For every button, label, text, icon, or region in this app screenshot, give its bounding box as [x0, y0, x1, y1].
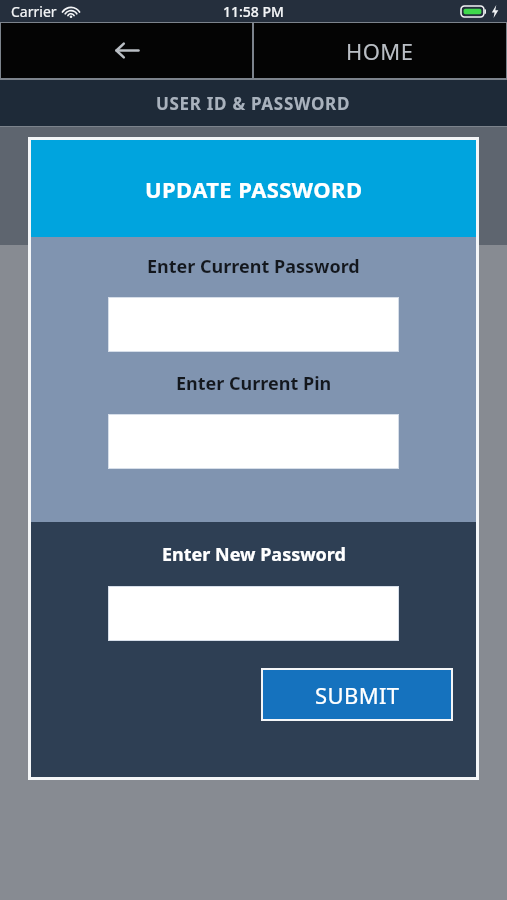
button[interactable]: HOME — [254, 23, 506, 78]
staticText: Enter Current Password — [147, 254, 360, 279]
staticText: UPDATE PASSWORD — [145, 174, 363, 204]
staticText: Carrier — [11, 2, 57, 21]
button[interactable]: USER ID & PASSWORD — [0, 80, 507, 126]
staticText: 11:58 PM — [223, 2, 284, 21]
staticText: Enter New Password — [162, 542, 346, 567]
staticText: USER ID & PASSWORD — [156, 92, 351, 115]
staticText: Enter Current Pin — [176, 371, 332, 396]
staticText: SUBMIT — [315, 680, 400, 710]
button[interactable]: SUBMIT — [263, 670, 451, 719]
staticText: HOME — [346, 36, 414, 66]
button[interactable]: Back — [1, 23, 252, 78]
